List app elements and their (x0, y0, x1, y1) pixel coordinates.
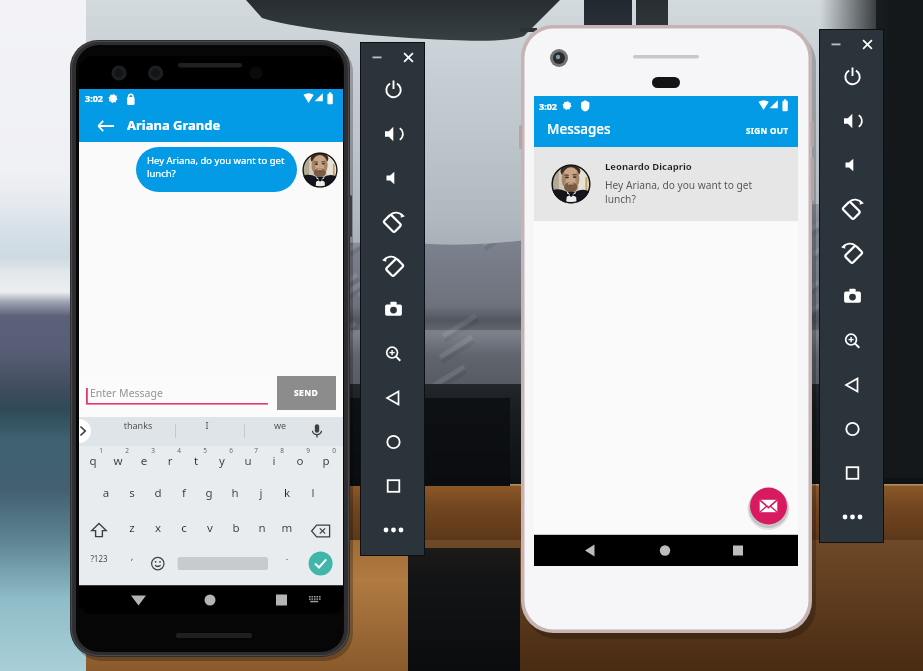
staticText: n (236, 520, 288, 542)
button[interactable]: Leonardo Dicaprio (534, 147, 798, 221)
button[interactable]: Power (377, 74, 409, 104)
button[interactable]: Minimize (826, 33, 846, 53)
staticText: Leonardo Dicaprio (605, 160, 755, 176)
staticText: z (106, 520, 158, 542)
staticText: y (196, 453, 248, 475)
staticText: q (79, 453, 119, 475)
button[interactable]: Close (857, 33, 877, 53)
staticText: x (132, 520, 184, 542)
button[interactable]: Back (836, 369, 868, 399)
button[interactable]: Recents (722, 538, 754, 563)
staticText: v (184, 520, 236, 542)
button[interactable]: SEND (277, 376, 336, 410)
button[interactable]: SIGN OUT (742, 116, 792, 144)
staticText: r (144, 453, 196, 475)
button[interactable]: Back (377, 382, 409, 412)
button[interactable]: Home (194, 587, 226, 612)
staticText: 6 (205, 446, 257, 468)
staticText: Enter Message (90, 386, 210, 404)
staticText: thanks (112, 419, 164, 441)
button[interactable]: Recents (265, 587, 297, 612)
staticText: m (261, 520, 313, 542)
staticText: 2 (101, 446, 153, 468)
staticText: 7 (230, 446, 282, 468)
staticText: SIGN OUT (746, 125, 789, 136)
staticText: . (261, 550, 313, 572)
button[interactable]: Back (574, 538, 606, 563)
button[interactable]: More (377, 514, 409, 544)
button[interactable]: Screenshot (836, 280, 868, 310)
staticText: 3:02 (85, 92, 117, 108)
button[interactable]: More (836, 501, 868, 531)
button[interactable]: Overview (377, 470, 409, 500)
button[interactable]: Enter (307, 551, 335, 577)
button[interactable]: Volume down (377, 162, 409, 192)
staticText: b (210, 520, 262, 542)
button[interactable]: Rotate left (836, 193, 868, 223)
staticText: w (92, 453, 144, 475)
button[interactable]: Screenshot (377, 293, 409, 323)
staticText: Hey Ariana, do you want to get lunch? (147, 154, 289, 188)
staticText: u (222, 453, 274, 475)
button[interactable]: Back (86, 116, 116, 141)
button[interactable]: Rotate right (836, 237, 868, 267)
staticText: 0 (308, 446, 343, 468)
staticText: Hey Ariana, do you want to get lunch? (605, 178, 763, 212)
button[interactable]: Rotate right (377, 250, 409, 280)
staticText: ?123 (79, 553, 125, 575)
staticText: 3 (127, 446, 179, 468)
staticText: we (254, 419, 306, 441)
staticText: j (235, 485, 287, 507)
button[interactable]: Overview (836, 457, 868, 487)
staticText: Messages (547, 120, 677, 142)
staticText: a (80, 485, 132, 507)
staticText: s (106, 485, 158, 507)
staticText: o (274, 453, 326, 475)
staticText: h (209, 485, 261, 507)
button[interactable]: Power (836, 61, 868, 91)
button[interactable]: Minimize (367, 46, 387, 66)
button[interactable]: Home (836, 413, 868, 443)
button[interactable]: Rotate left (377, 206, 409, 236)
staticText: g (183, 485, 235, 507)
button[interactable]: Volume up (377, 118, 409, 148)
staticText: p (300, 453, 343, 475)
button[interactable]: Home (650, 538, 682, 563)
staticText: 3:02 (539, 100, 571, 116)
staticText: k (261, 485, 313, 507)
staticText: 8 (256, 446, 308, 468)
button[interactable]: Home (377, 426, 409, 456)
button[interactable]: Compose message (750, 488, 787, 525)
button[interactable]: Close (398, 46, 418, 66)
staticText: i (248, 453, 300, 475)
button[interactable]: Volume up (836, 105, 868, 135)
button[interactable]: Zoom (377, 338, 409, 368)
button[interactable]: Volume down (836, 149, 868, 179)
staticText: 1 (79, 446, 127, 468)
staticText: , (106, 550, 158, 572)
staticText: 4 (153, 446, 205, 468)
staticText: f (158, 485, 210, 507)
staticText: t (170, 453, 222, 475)
staticText: l (287, 485, 339, 507)
button[interactable]: Back (123, 587, 155, 612)
staticText: d (132, 485, 184, 507)
staticText: I (181, 419, 233, 441)
staticText: SEND (294, 387, 319, 399)
staticText: e (118, 453, 170, 475)
button[interactable]: Zoom (836, 325, 868, 355)
staticText: 9 (282, 446, 334, 468)
staticText: 5 (179, 446, 231, 468)
staticText: Ariana Grande (127, 116, 287, 138)
staticText: c (158, 520, 210, 542)
